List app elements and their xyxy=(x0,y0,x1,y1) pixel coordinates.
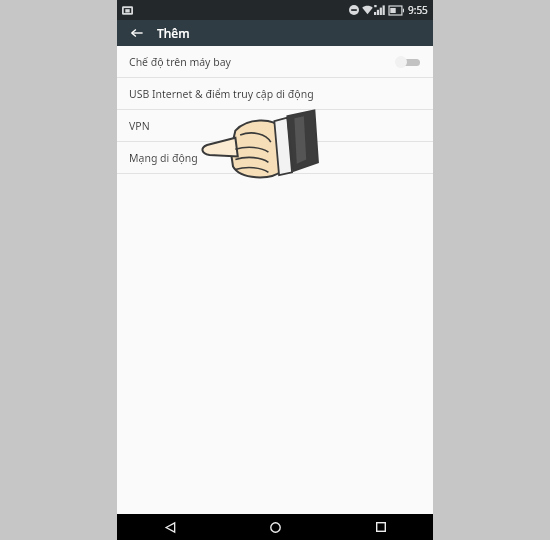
button[interactable]: Mạng di động xyxy=(117,142,433,173)
button[interactable]: USB Internet & điểm truy cập di động xyxy=(117,78,433,109)
staticText: Chế độ trên máy bay xyxy=(129,55,395,69)
staticText: VPN xyxy=(129,119,421,133)
button[interactable]: Back xyxy=(117,514,223,540)
staticText: Thêm xyxy=(157,25,190,41)
button[interactable]: Back xyxy=(117,20,157,46)
button[interactable]: Airplane mode toggle xyxy=(395,55,421,69)
button[interactable]: Recent apps xyxy=(328,514,433,540)
button[interactable]: VPN xyxy=(117,110,433,141)
button[interactable]: Home xyxy=(223,514,328,540)
button[interactable]: Chế độ trên máy bay xyxy=(117,46,433,77)
staticText: USB Internet & điểm truy cập di động xyxy=(129,87,421,101)
staticText: Mạng di động xyxy=(129,151,421,165)
staticText: 9:55 xyxy=(408,3,428,17)
